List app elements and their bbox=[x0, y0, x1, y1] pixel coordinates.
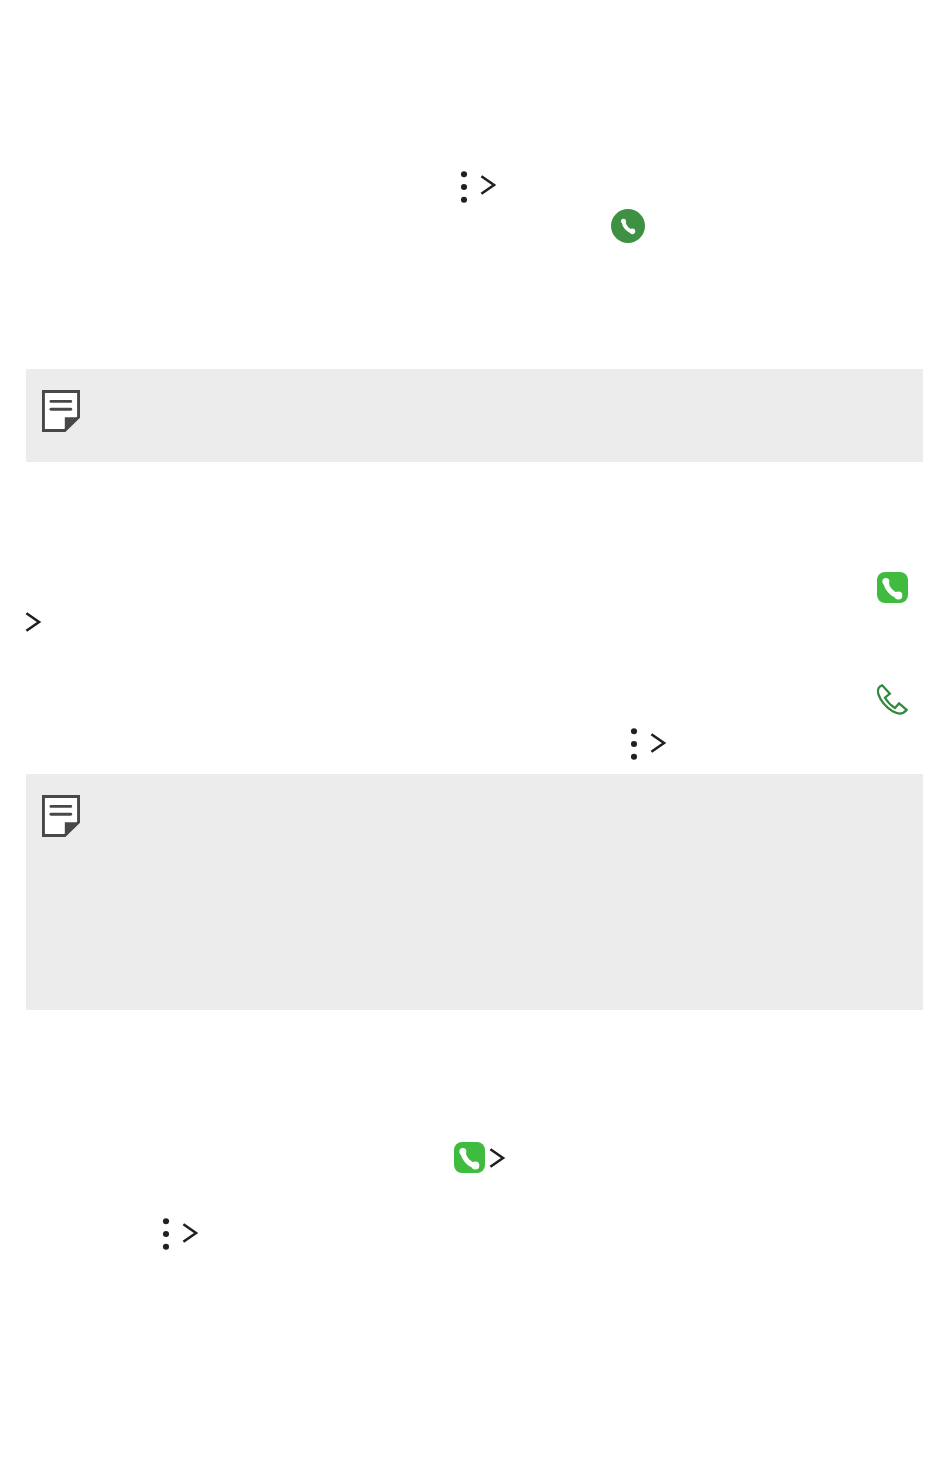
button[interactable]: Next step bbox=[180, 1218, 202, 1248]
button[interactable]: Next step bbox=[478, 170, 500, 200]
button[interactable]: More options bbox=[616, 725, 652, 763]
button[interactable] bbox=[26, 369, 923, 462]
button[interactable]: Next step bbox=[23, 607, 45, 637]
button[interactable]: Next step bbox=[487, 1143, 509, 1173]
button[interactable]: Phone app bbox=[454, 1142, 485, 1173]
button[interactable]: Next step bbox=[648, 728, 670, 758]
button[interactable]: More options bbox=[148, 1215, 184, 1253]
button[interactable]: More options bbox=[446, 168, 482, 206]
button[interactable] bbox=[26, 774, 923, 1010]
button[interactable]: Phone app bbox=[611, 209, 645, 243]
button[interactable]: Call bbox=[875, 683, 910, 718]
button[interactable]: Phone app bbox=[877, 572, 908, 603]
